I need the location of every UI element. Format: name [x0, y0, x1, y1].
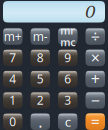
button[interactable]: + [85, 70, 105, 87]
button[interactable]: 1 [3, 92, 22, 109]
staticText: m- [33, 28, 48, 44]
staticText: . [38, 111, 42, 130]
staticText: 4 [9, 71, 16, 87]
staticText: 8 [37, 50, 44, 65]
staticText: − [91, 90, 100, 111]
staticText: 2 [37, 92, 44, 108]
button[interactable]: 6 [58, 70, 77, 87]
staticText: = [91, 111, 100, 130]
staticText: 9 [64, 50, 71, 65]
button[interactable]: 8 [30, 49, 50, 66]
staticText: 0 [85, 2, 96, 22]
button[interactable]: m- [30, 28, 50, 45]
button[interactable]: − [85, 92, 105, 109]
staticText: ÷ [91, 26, 100, 47]
button[interactable]: mr mc [58, 28, 77, 45]
button[interactable]: 4 [3, 70, 22, 87]
staticText: 5 [37, 71, 44, 87]
button[interactable]: 0 [3, 113, 22, 130]
button[interactable]: 9 [58, 49, 77, 66]
button[interactable]: c [58, 113, 77, 130]
staticText: 0 [9, 113, 16, 129]
button[interactable]: 7 [3, 49, 22, 66]
staticText: × [91, 47, 100, 68]
button[interactable]: 5 [30, 70, 50, 87]
staticText: m+ [4, 28, 22, 44]
staticText: 6 [64, 71, 71, 87]
staticText: mr [60, 23, 75, 38]
staticText: mc [60, 35, 75, 49]
button[interactable]: × [85, 49, 105, 66]
button[interactable]: = [85, 113, 105, 130]
staticText: + [91, 68, 100, 89]
button[interactable]: 3 [58, 92, 77, 109]
button[interactable]: ÷ [85, 28, 105, 45]
staticText: 1 [9, 92, 16, 108]
button[interactable]: . [30, 113, 50, 130]
button[interactable]: m+ [3, 28, 22, 45]
staticText: c [65, 113, 71, 130]
staticText: 7 [9, 50, 16, 65]
button[interactable]: 2 [30, 92, 50, 109]
staticText: 3 [64, 92, 71, 108]
